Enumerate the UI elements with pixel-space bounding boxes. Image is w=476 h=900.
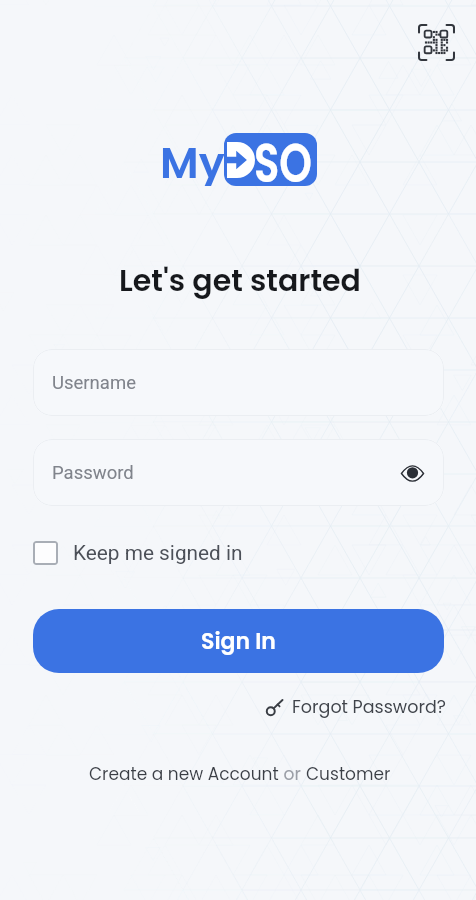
staticText: Username [52,372,136,394]
button[interactable]: Show password [396,457,428,489]
staticText: or [279,762,306,786]
button[interactable]: Password [33,439,444,506]
staticText: Password [52,462,134,484]
staticText: SO [254,125,312,201]
staticText: Create a new Account [89,762,279,786]
button[interactable]: Username [33,349,444,416]
button[interactable]: Scan QR code [406,12,466,72]
staticText: Sign In [201,626,276,657]
staticText: Forgot Password? [292,695,446,720]
button[interactable]: Sign In [33,609,444,673]
button[interactable]: Keep me signed in [33,537,243,569]
staticText: Keep me signed in [73,541,243,565]
staticText: My [160,133,225,186]
staticText: Customer [306,762,391,786]
staticText: Let's get started [2,260,476,302]
button[interactable]: Forgot Password? [266,692,446,722]
button[interactable]: Create a new Account [89,762,391,786]
